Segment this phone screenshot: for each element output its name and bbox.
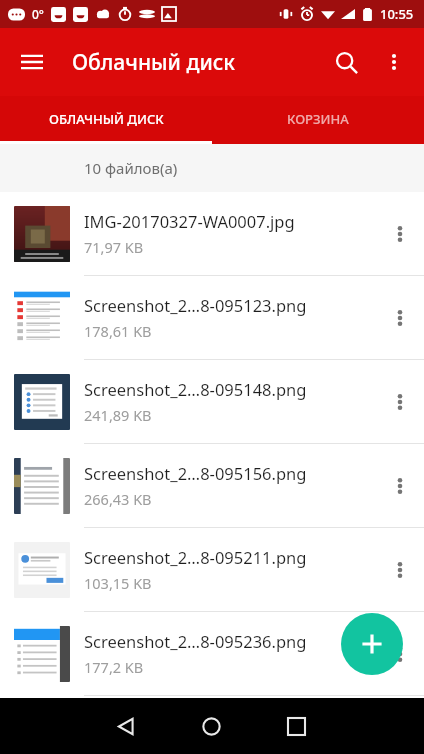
staticText: КОРЗИНА: [287, 110, 349, 128]
button[interactable]: Screenshot_2…8-095211.png: [0, 528, 424, 612]
staticText: 266,43 KB: [84, 489, 152, 509]
button[interactable]: File options: [376, 528, 424, 611]
staticText: 0°: [32, 6, 44, 22]
staticText: ОБЛАЧНЫЙ ДИСК: [49, 110, 164, 128]
button[interactable]: File options: [376, 192, 424, 275]
button[interactable]: КОРЗИНА: [212, 96, 424, 141]
staticText: 177,2 KB: [84, 657, 144, 677]
staticText: 10 файлов(а): [84, 158, 178, 178]
staticText: Screenshot_2…8-095156.png: [84, 462, 307, 484]
button[interactable]: More options: [370, 38, 418, 86]
button[interactable]: Open navigation menu: [8, 38, 56, 86]
button[interactable]: Add file: [341, 613, 403, 675]
button[interactable]: File options: [376, 360, 424, 443]
button[interactable]: Screenshot_2…8-095156.png: [0, 444, 424, 528]
staticText: Облачный диск: [72, 48, 235, 77]
button[interactable]: File options: [376, 612, 424, 695]
staticText: 10:55: [380, 5, 414, 23]
staticText: 71,97 KB: [84, 237, 144, 257]
button[interactable]: Back: [84, 698, 169, 754]
staticText: 103,15 KB: [84, 573, 152, 593]
button[interactable]: IMG-20170327-WA0007.jpg: [0, 192, 424, 276]
button[interactable]: Search: [322, 38, 370, 86]
staticText: 178,61 KB: [84, 321, 152, 341]
button[interactable]: Screenshot_2…8-095236.png: [0, 612, 424, 696]
staticText: Screenshot_2…8-095148.png: [84, 378, 307, 400]
staticText: 241,89 KB: [84, 405, 152, 425]
button[interactable]: Recent apps: [254, 698, 339, 754]
button[interactable]: Screenshot_2…8-095148.png: [0, 360, 424, 444]
button[interactable]: Home: [169, 698, 254, 754]
button[interactable]: Screenshot_2…8-095123.png: [0, 276, 424, 360]
button[interactable]: File options: [376, 444, 424, 527]
staticText: Screenshot_2…8-095211.png: [84, 546, 307, 568]
staticText: IMG-20170327-WA0007.jpg: [84, 210, 295, 232]
staticText: Screenshot_2…8-095123.png: [84, 294, 307, 316]
button[interactable]: ОБЛАЧНЫЙ ДИСК: [0, 96, 212, 141]
button[interactable]: File options: [376, 276, 424, 359]
staticText: Screenshot_2…8-095236.png: [84, 630, 307, 652]
